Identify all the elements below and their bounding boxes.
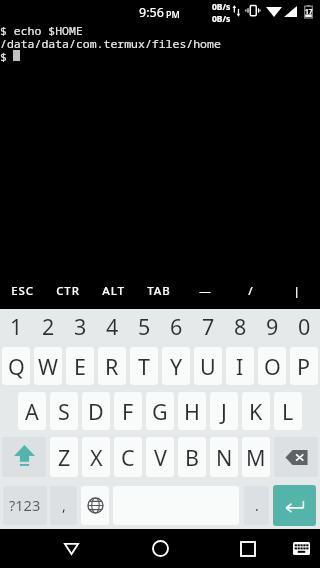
staticText: 0B/s: [212, 13, 231, 25]
staticText: H: [184, 397, 200, 426]
button[interactable]: H: [178, 392, 206, 430]
staticText: 7: [202, 312, 215, 341]
staticText: PM: [166, 8, 180, 20]
staticText: ?123: [9, 495, 41, 515]
button[interactable]: Back: [51, 529, 91, 568]
button[interactable]: B: [178, 437, 206, 477]
button[interactable]: A: [18, 392, 46, 430]
button[interactable]: Change language: [81, 486, 109, 525]
button[interactable]: 6: [160, 309, 192, 344]
staticText: ESC: [11, 283, 34, 299]
button[interactable]: D: [82, 392, 110, 430]
staticText: G: [152, 397, 168, 426]
staticText: $ echo $HOME /data/data/com.termux/files…: [0, 23, 221, 64]
button[interactable]: Z: [50, 437, 78, 477]
staticText: 0B/s: [212, 1, 231, 13]
staticText: 6: [170, 312, 183, 341]
staticText: |: [293, 283, 301, 299]
staticText: C: [121, 443, 135, 472]
staticText: 1: [10, 312, 23, 341]
button[interactable]: Y: [162, 347, 190, 385]
staticText: A: [25, 397, 39, 426]
staticText: Y: [170, 352, 183, 381]
staticText: 4: [106, 312, 119, 341]
button[interactable]: —: [182, 272, 228, 309]
staticText: F: [122, 397, 134, 426]
button[interactable]: J: [210, 392, 238, 430]
staticText: T: [138, 352, 150, 381]
button[interactable]: N: [210, 437, 238, 477]
button[interactable]: Shift: [2, 437, 46, 477]
button[interactable]: 9: [256, 309, 288, 344]
staticText: 9: [266, 312, 279, 341]
staticText: L: [282, 397, 294, 426]
staticText: 0: [298, 312, 311, 341]
staticText: 9:56: [139, 4, 164, 21]
button[interactable]: R: [98, 347, 126, 385]
staticText: M: [246, 443, 266, 472]
staticText: N: [216, 443, 233, 472]
button[interactable]: 4: [96, 309, 128, 344]
staticText: CTR: [56, 283, 80, 299]
button[interactable]: F: [114, 392, 142, 430]
button[interactable]: Delete: [274, 437, 318, 477]
button[interactable]: W: [34, 347, 62, 385]
staticText: K: [249, 397, 263, 426]
staticText: S: [58, 397, 70, 426]
button[interactable]: Home: [140, 529, 180, 568]
staticText: D: [88, 397, 104, 426]
button[interactable]: K: [242, 392, 270, 430]
button[interactable]: T: [130, 347, 158, 385]
staticText: W: [38, 352, 58, 381]
staticText: Z: [58, 443, 71, 472]
button[interactable]: L: [274, 392, 302, 430]
button[interactable]: /: [228, 272, 274, 309]
staticText: Q: [8, 352, 25, 381]
button[interactable]: M: [242, 437, 270, 477]
button[interactable]: V: [146, 437, 174, 477]
staticText: E: [74, 352, 86, 381]
staticText: I: [236, 352, 244, 381]
staticText: X: [90, 443, 103, 472]
staticText: U: [200, 352, 216, 381]
button[interactable]: Q: [2, 347, 30, 385]
staticText: 5: [138, 312, 151, 341]
button[interactable]: E: [66, 347, 94, 385]
button[interactable]: I: [226, 347, 254, 385]
button[interactable]: 3: [64, 309, 96, 344]
button[interactable]: |: [274, 272, 320, 309]
staticText: V: [154, 443, 167, 472]
button[interactable]: 2: [32, 309, 64, 344]
button[interactable]: .: [244, 486, 269, 525]
staticText: /: [248, 283, 254, 299]
button[interactable]: C: [114, 437, 142, 477]
button[interactable]: ESC: [0, 272, 45, 309]
staticText: P: [297, 352, 311, 381]
staticText: .: [255, 496, 259, 515]
button[interactable]: Recent apps: [228, 529, 268, 568]
button[interactable]: ?123: [3, 486, 47, 525]
button[interactable]: 1: [0, 309, 32, 344]
button[interactable]: Switch keyboard: [285, 529, 317, 568]
button[interactable]: P: [290, 347, 318, 385]
staticText: J: [221, 397, 227, 426]
button[interactable]: U: [194, 347, 222, 385]
button[interactable]: 0: [288, 309, 320, 344]
staticText: ,: [62, 496, 66, 515]
button[interactable]: X: [82, 437, 110, 477]
button[interactable]: 7: [192, 309, 224, 344]
button[interactable]: ALT: [90, 272, 136, 309]
button[interactable]: O: [258, 347, 286, 385]
button[interactable]: CTR: [45, 272, 90, 309]
button[interactable]: G: [146, 392, 174, 430]
button[interactable]: Enter: [273, 485, 316, 526]
staticText: 8: [234, 312, 247, 341]
button[interactable]: 5: [128, 309, 160, 344]
staticText: 3: [74, 312, 87, 341]
button[interactable]: 8: [224, 309, 256, 344]
button[interactable]: S: [50, 392, 78, 430]
button[interactable]: TAB: [136, 272, 182, 309]
staticText: O: [264, 352, 281, 381]
button[interactable]: ,: [50, 486, 77, 525]
